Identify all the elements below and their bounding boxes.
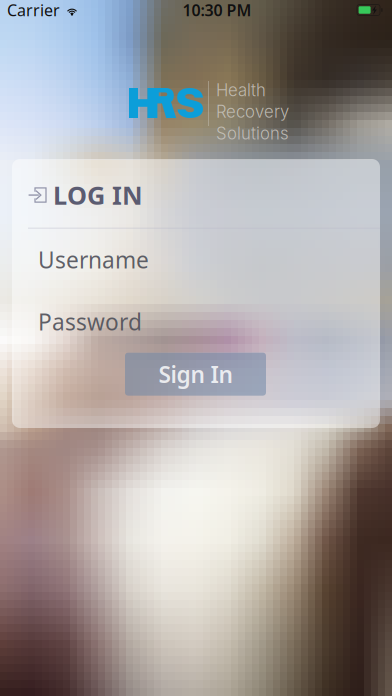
- staticText: Sign In: [158, 359, 232, 389]
- button[interactable]: Sign In: [125, 353, 266, 396]
- staticText: Carrier: [7, 0, 60, 21]
- staticText: Solutions: [216, 123, 289, 143]
- button[interactable]: Password: [12, 291, 380, 353]
- staticText: LOG IN: [53, 178, 143, 212]
- button[interactable]: Username: [12, 229, 380, 291]
- staticText: Recovery: [216, 102, 289, 122]
- staticText: 10:30 PM: [182, 0, 251, 21]
- staticText: Health: [216, 80, 266, 100]
- staticText: Password: [38, 307, 142, 337]
- staticText: Username: [38, 245, 149, 275]
